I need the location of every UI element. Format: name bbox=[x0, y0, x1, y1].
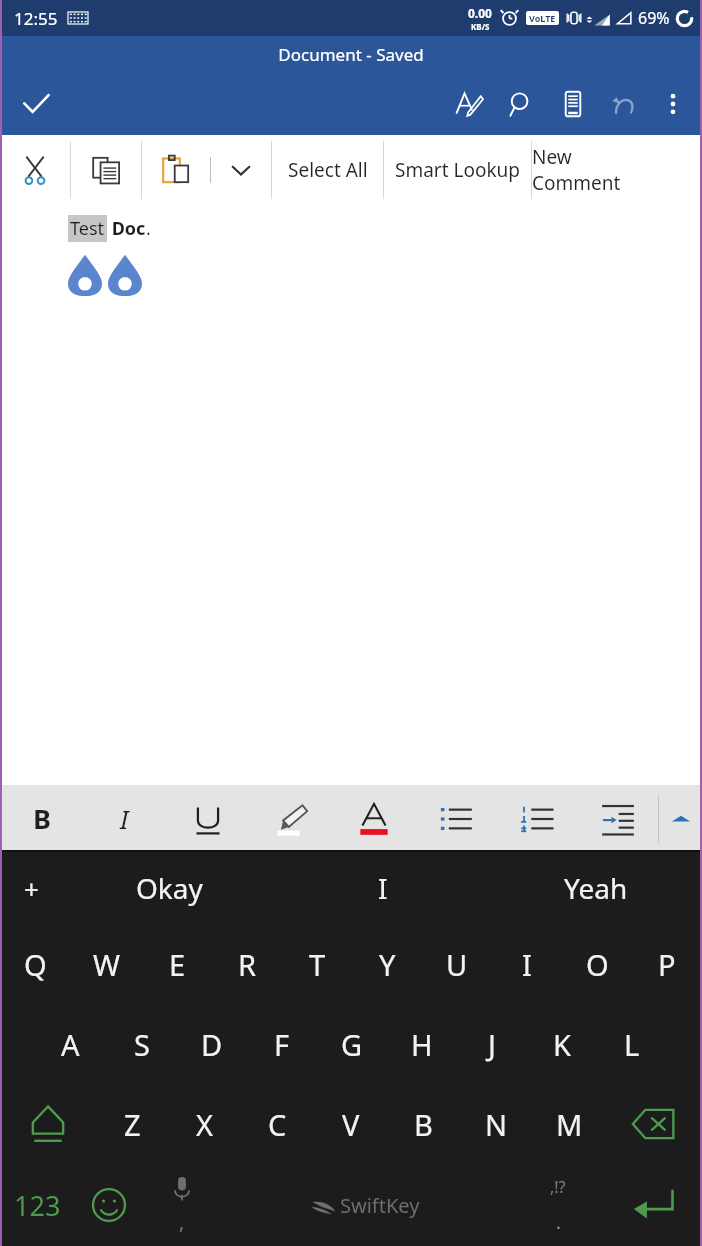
staticText: H bbox=[411, 1025, 433, 1064]
staticText: O bbox=[586, 945, 609, 984]
staticText: S bbox=[134, 1025, 150, 1064]
button[interactable]: Emoji bbox=[74, 1164, 144, 1246]
staticText: ,!? bbox=[550, 1176, 566, 1198]
button[interactable]: Undo bbox=[602, 81, 648, 127]
button[interactable]: Highlight bbox=[249, 785, 332, 852]
button[interactable]: Add bbox=[0, 852, 62, 924]
button[interactable]: V bbox=[314, 1084, 387, 1164]
button[interactable]: ,!? bbox=[510, 1164, 606, 1246]
button[interactable]: B bbox=[387, 1084, 460, 1164]
staticText: G bbox=[341, 1025, 363, 1064]
button[interactable]: Select All bbox=[272, 141, 383, 199]
button[interactable]: Search bbox=[498, 81, 544, 127]
staticText: I bbox=[522, 945, 532, 984]
button[interactable]: Enter bbox=[606, 1164, 702, 1246]
button[interactable]: I bbox=[83, 785, 166, 852]
button[interactable]: Expand ribbon bbox=[659, 785, 702, 852]
staticText: M bbox=[556, 1105, 583, 1144]
button[interactable]: Copy bbox=[71, 141, 141, 199]
button[interactable]: Z bbox=[96, 1084, 168, 1164]
button[interactable]: I bbox=[276, 852, 489, 924]
staticText: R bbox=[238, 945, 257, 984]
button[interactable]: Cut bbox=[0, 141, 70, 199]
button[interactable]: F bbox=[247, 1004, 317, 1084]
staticText: . bbox=[556, 1210, 561, 1235]
staticText: Okay bbox=[136, 869, 203, 907]
button[interactable]: Font color bbox=[332, 785, 415, 852]
button[interactable]: P bbox=[632, 924, 702, 1004]
button[interactable]: More options bbox=[650, 81, 696, 127]
staticText: K bbox=[553, 1025, 571, 1064]
staticText: Select All bbox=[288, 157, 368, 183]
button[interactable]: L bbox=[597, 1004, 667, 1084]
button[interactable]: E bbox=[142, 924, 212, 1004]
staticText: New Comment bbox=[532, 144, 650, 196]
button[interactable]: Q bbox=[0, 924, 71, 1004]
staticText: N bbox=[485, 1105, 508, 1144]
button[interactable]: X bbox=[168, 1084, 241, 1164]
staticText: P bbox=[658, 945, 676, 984]
button[interactable]: T bbox=[282, 924, 352, 1004]
button[interactable]: Done bbox=[8, 76, 64, 132]
button[interactable]: H bbox=[387, 1004, 457, 1084]
staticText: Smart Lookup bbox=[395, 157, 521, 183]
staticText: . bbox=[146, 216, 151, 241]
button[interactable]: 123 bbox=[0, 1164, 74, 1246]
staticText: L bbox=[624, 1025, 640, 1064]
button[interactable]: W bbox=[71, 924, 142, 1004]
staticText: X bbox=[196, 1105, 213, 1144]
staticText: 0.00 bbox=[468, 5, 492, 21]
button[interactable]: Okay bbox=[62, 852, 276, 924]
button[interactable]: Paste bbox=[142, 141, 210, 199]
button[interactable]: More bbox=[211, 141, 271, 199]
button[interactable]: B bbox=[0, 785, 83, 852]
button[interactable]: N bbox=[460, 1084, 533, 1164]
staticText: B bbox=[414, 1105, 433, 1144]
staticText: E bbox=[169, 945, 186, 984]
staticText: SwiftKey bbox=[340, 1192, 420, 1219]
staticText: + bbox=[24, 871, 39, 906]
button[interactable]: J bbox=[457, 1004, 527, 1084]
staticText: 123 bbox=[14, 1187, 61, 1224]
button[interactable]: Voice input bbox=[144, 1164, 220, 1246]
staticText: I bbox=[378, 869, 388, 907]
button[interactable]: M bbox=[533, 1084, 606, 1164]
staticText: F bbox=[274, 1025, 290, 1064]
button[interactable]: Shift bbox=[0, 1084, 96, 1164]
button[interactable]: D bbox=[177, 1004, 247, 1084]
staticText: Y bbox=[379, 945, 396, 984]
button[interactable]: Space bbox=[220, 1164, 510, 1246]
button[interactable]: U bbox=[422, 924, 492, 1004]
button[interactable]: Numbered list bbox=[496, 785, 577, 852]
staticText: D bbox=[201, 1025, 223, 1064]
button[interactable]: R bbox=[212, 924, 282, 1004]
button[interactable]: C bbox=[241, 1084, 314, 1164]
button[interactable]: New Comment bbox=[532, 141, 650, 199]
button[interactable]: I bbox=[492, 924, 562, 1004]
button[interactable]: Y bbox=[352, 924, 422, 1004]
button[interactable]: K bbox=[527, 1004, 597, 1084]
button[interactable]: Bullet list bbox=[415, 785, 496, 852]
staticText: T bbox=[309, 945, 326, 984]
staticText: U bbox=[446, 945, 468, 984]
button[interactable]: Mobile view bbox=[550, 81, 596, 127]
staticText: I bbox=[120, 801, 129, 836]
staticText: J bbox=[488, 1025, 496, 1064]
staticText: Z bbox=[124, 1105, 141, 1144]
button[interactable]: Indent bbox=[577, 785, 658, 852]
button[interactable]: Ink bbox=[446, 81, 492, 127]
button[interactable]: A bbox=[35, 1004, 106, 1084]
button[interactable]: Yeah bbox=[489, 852, 702, 924]
button[interactable]: Smart Lookup bbox=[384, 141, 531, 199]
staticText: B bbox=[33, 800, 51, 837]
staticText: VoLTE bbox=[529, 12, 556, 24]
button[interactable]: Underline bbox=[166, 785, 249, 852]
staticText: Document - Saved bbox=[278, 43, 424, 66]
staticText: 12:55 bbox=[14, 7, 58, 30]
button[interactable]: O bbox=[562, 924, 632, 1004]
button[interactable]: G bbox=[317, 1004, 387, 1084]
button[interactable]: S bbox=[106, 1004, 177, 1084]
staticText: V bbox=[342, 1105, 360, 1144]
staticText: C bbox=[268, 1105, 287, 1144]
button[interactable]: Backspace bbox=[606, 1084, 702, 1164]
